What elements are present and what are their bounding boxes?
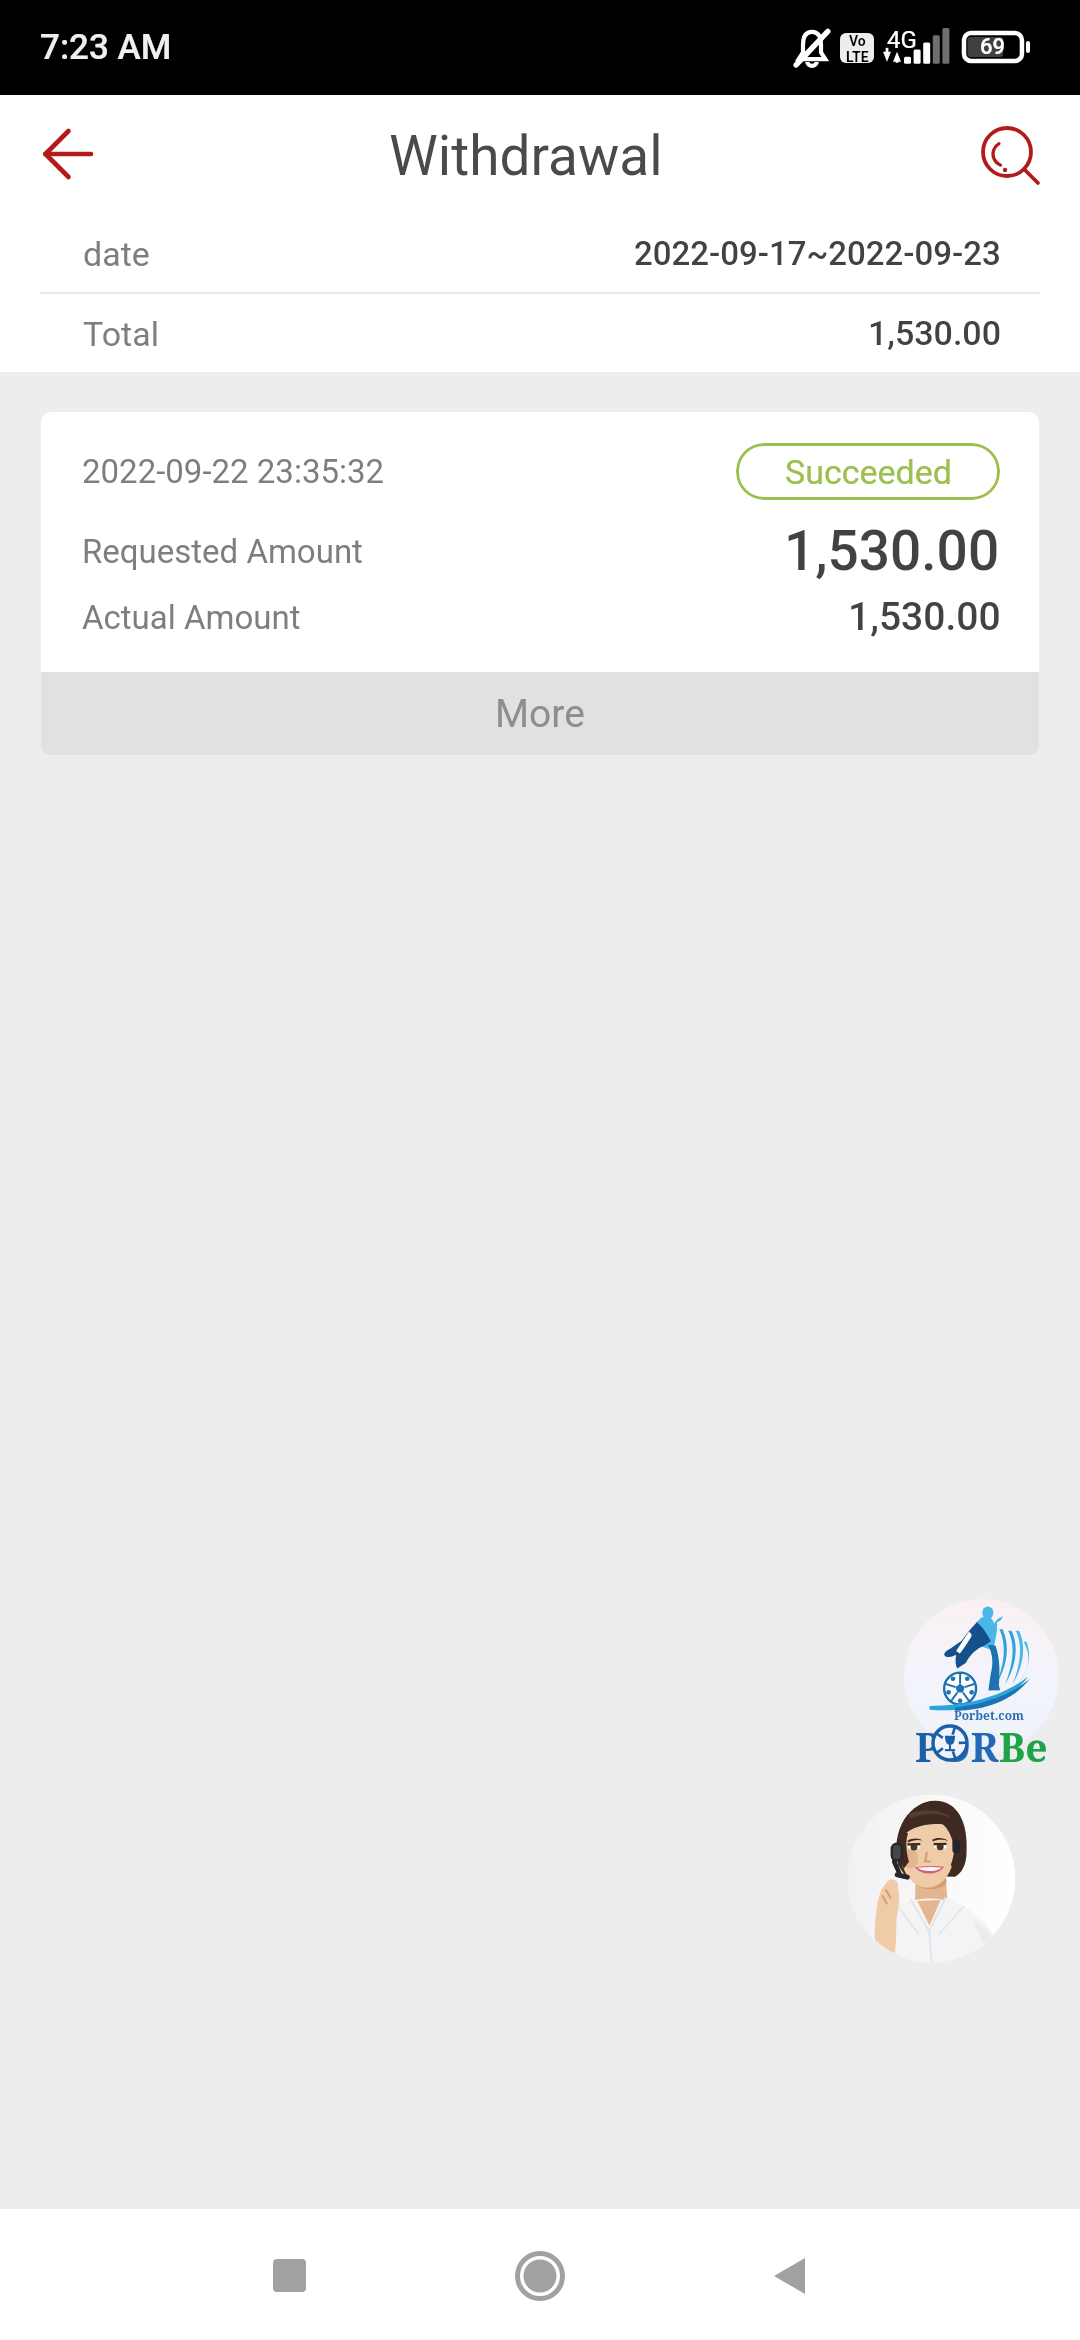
staticText: 2022-09-17~2022-09-23 bbox=[634, 234, 1001, 273]
button[interactable]: Recent apps bbox=[233, 2209, 345, 2340]
staticText: Vo bbox=[849, 33, 866, 49]
button[interactable]: Search bbox=[963, 95, 1080, 212]
staticText: Succeeded bbox=[785, 452, 952, 492]
staticText: 4G bbox=[887, 26, 917, 54]
staticText: Actual Amount bbox=[82, 598, 301, 637]
staticText: 1,530.00 bbox=[784, 519, 1000, 583]
staticText: P bbox=[915, 1720, 940, 1773]
staticText: Withdrawal bbox=[389, 124, 663, 188]
button[interactable]: Back bbox=[0, 95, 117, 212]
button[interactable]: Home bbox=[484, 2209, 596, 2340]
staticText: OR bbox=[940, 1720, 999, 1773]
staticText: 69 bbox=[980, 34, 1006, 60]
staticText: 2022-09-22 23:35:32 bbox=[82, 452, 385, 491]
button[interactable]: Customer service bbox=[848, 1795, 1015, 1962]
staticText: 7:23 AM bbox=[40, 27, 172, 68]
staticText: date bbox=[83, 234, 150, 274]
staticText: 1,530.00 bbox=[848, 594, 1001, 640]
staticText: 1,530.00 bbox=[868, 313, 1001, 353]
staticText: LTE bbox=[846, 49, 869, 63]
staticText: Be bbox=[999, 1720, 1048, 1773]
staticText: More bbox=[495, 691, 585, 737]
button[interactable]: More bbox=[41, 672, 1039, 755]
staticText: Requested Amount bbox=[82, 532, 363, 571]
button[interactable]: Succeeded bbox=[736, 443, 1000, 500]
button[interactable]: Back bbox=[733, 2209, 845, 2340]
staticText: Total bbox=[83, 314, 159, 354]
staticText: Porbet.com bbox=[954, 1707, 1024, 1723]
button[interactable]: Porbet logo bbox=[904, 1599, 1059, 1754]
